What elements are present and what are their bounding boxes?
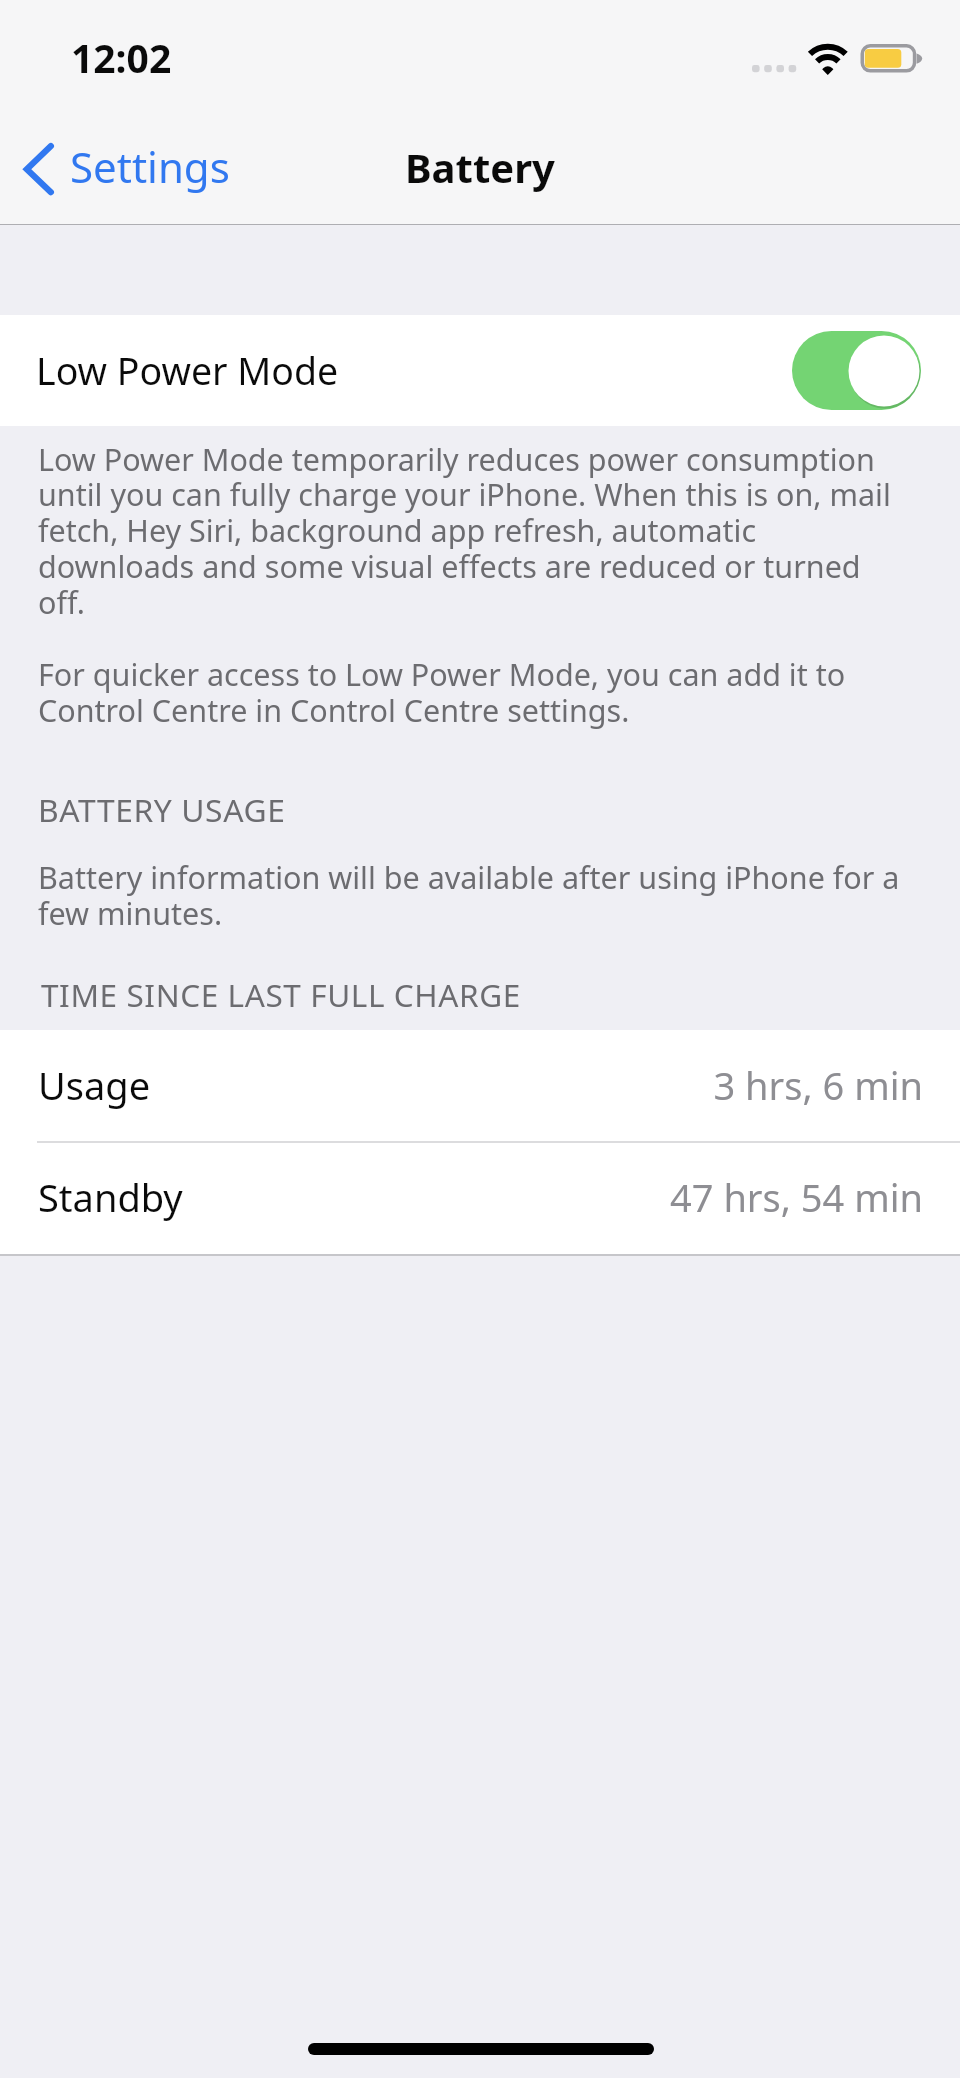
staticText: Standby — [38, 1171, 183, 1223]
button[interactable]: Standby — [0, 1142, 960, 1254]
staticText: For quicker access to Low Power Mode, yo… — [38, 653, 846, 731]
button[interactable]: Usage — [0, 1030, 960, 1142]
staticText: Battery — [405, 140, 555, 194]
staticText: 3 hrs, 6 min — [0, 1059, 923, 1111]
staticText: 47 hrs, 54 min — [0, 1171, 923, 1223]
staticText: Usage — [38, 1059, 151, 1111]
staticText: Settings — [70, 138, 230, 195]
staticText: Low Power Mode temporarily reduces power… — [38, 438, 891, 623]
staticText: Low Power Mode — [36, 345, 339, 396]
button[interactable]: Settings — [8, 130, 242, 210]
staticText: Battery information will be available af… — [38, 856, 900, 934]
button[interactable]: Low Power Mode, on — [792, 331, 921, 410]
staticText: TIME SINCE LAST FULL CHARGE — [41, 973, 521, 1016]
staticText: 12:02 — [71, 31, 172, 84]
staticText: BATTERY USAGE — [38, 788, 286, 831]
button[interactable]: Low Power Mode — [0, 315, 960, 426]
